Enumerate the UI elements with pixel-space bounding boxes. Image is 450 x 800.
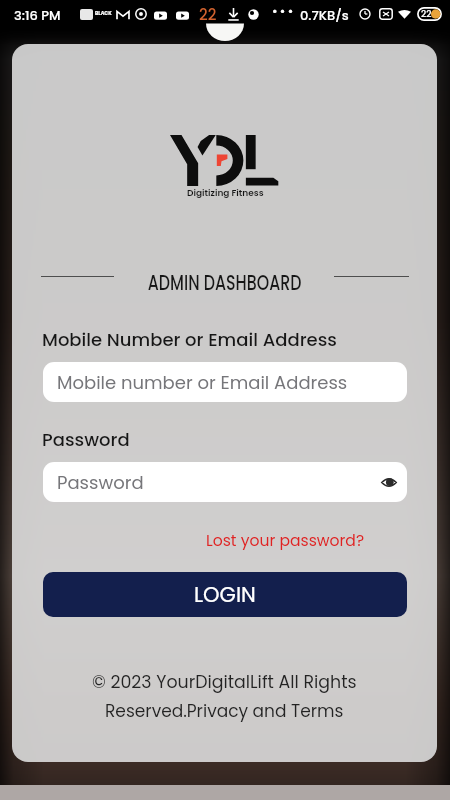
- staticText: ADMIN DASHBOARD: [148, 267, 301, 298]
- staticText: 22: [199, 4, 217, 25]
- staticText: Password: [57, 470, 144, 495]
- staticText: Mobile Number or Email Address: [42, 327, 337, 352]
- staticText: Reserved.Privacy and Terms: [105, 699, 344, 723]
- button[interactable]: LOGIN: [43, 572, 407, 617]
- staticText: 0.7KB/s: [300, 6, 349, 24]
- button[interactable]: Lost your password?: [204, 528, 367, 554]
- staticText: © 2023 YourDigitalLift All Rights: [92, 670, 357, 694]
- staticText: LOGIN: [194, 580, 256, 609]
- staticText: Mobile number or Email Address: [57, 370, 348, 395]
- staticText: 3:16 PM: [14, 6, 61, 24]
- button[interactable]: Password: [43, 462, 407, 502]
- button[interactable]: Show password: [376, 469, 402, 495]
- staticText: BLACK: [95, 10, 112, 17]
- staticText: • • •: [272, 3, 294, 18]
- button[interactable]: Mobile number or Email Address: [43, 362, 407, 402]
- staticText: 22: [421, 8, 432, 21]
- staticText: Password: [42, 427, 130, 452]
- staticText: Digitizing Fitness: [187, 187, 264, 200]
